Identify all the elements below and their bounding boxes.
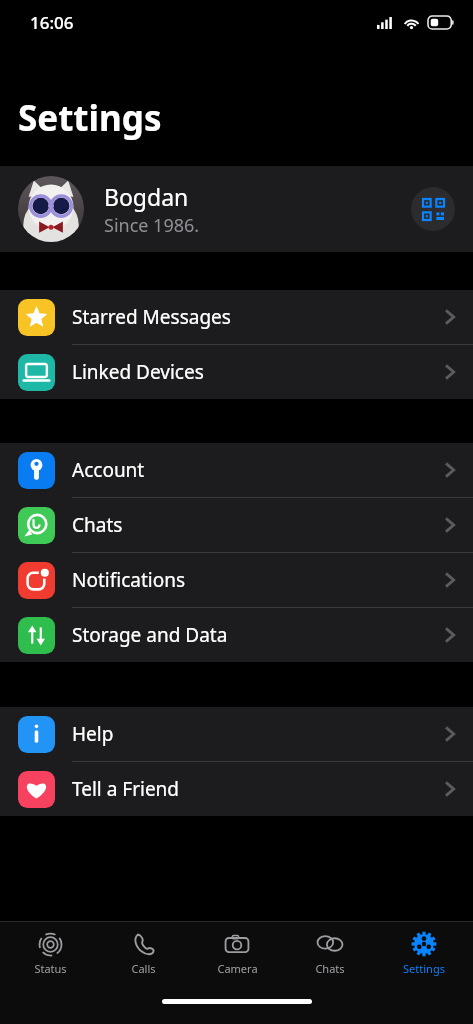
button[interactable]: Storage and Data: [0, 608, 473, 662]
button[interactable]: Settings: [380, 927, 468, 979]
staticText: Since 1986.: [104, 213, 200, 238]
staticText: Settings: [403, 961, 445, 976]
button[interactable]: Notifications: [0, 553, 473, 607]
staticText: Camera: [217, 961, 258, 976]
staticText: Status: [34, 961, 67, 976]
button[interactable]: Help: [0, 707, 473, 761]
staticText: Calls: [131, 961, 156, 976]
staticText: Starred Messages: [72, 304, 444, 330]
button[interactable]: Chats: [0, 498, 473, 552]
button[interactable]: Account: [0, 443, 473, 497]
button[interactable]: Status: [6, 927, 94, 979]
button[interactable]: Starred Messages: [0, 290, 473, 344]
staticText: Tell a Friend: [72, 776, 444, 802]
staticText: Storage and Data: [72, 622, 444, 648]
button[interactable]: Bogdan: [0, 166, 473, 252]
button[interactable]: Camera: [193, 927, 281, 979]
staticText: Chats: [315, 961, 345, 976]
staticText: Account: [72, 457, 444, 483]
button[interactable]: Linked Devices: [0, 345, 473, 399]
staticText: Settings: [18, 94, 162, 142]
staticText: Help: [72, 721, 444, 747]
staticText: Notifications: [72, 567, 444, 593]
button[interactable]: Show QR code: [411, 187, 455, 231]
button[interactable]: Tell a Friend: [0, 762, 473, 816]
staticText: 16:06: [30, 11, 74, 34]
button[interactable]: Calls: [99, 927, 187, 979]
button[interactable]: Chats: [286, 927, 374, 979]
staticText: Linked Devices: [72, 359, 444, 385]
staticText: Bogdan: [104, 181, 189, 212]
staticText: Chats: [72, 512, 444, 538]
